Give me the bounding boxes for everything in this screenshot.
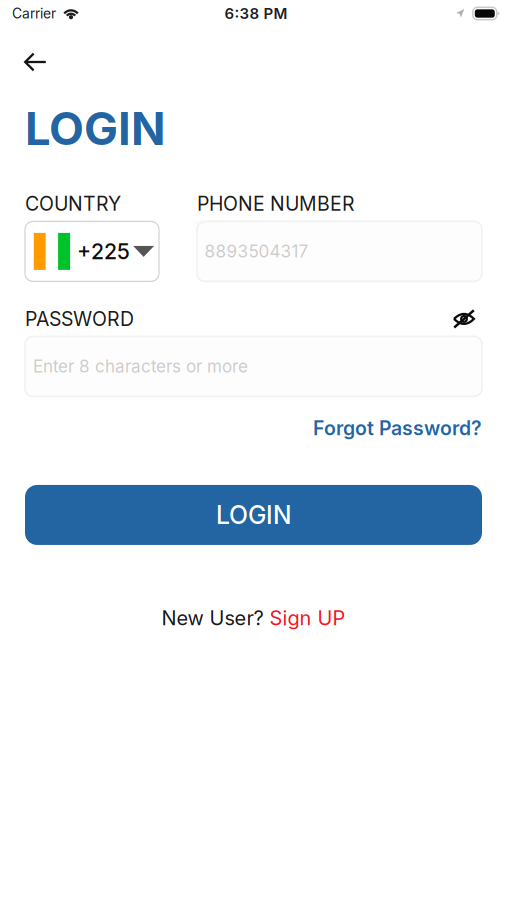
- staticText: Carrier: [12, 5, 56, 22]
- button[interactable]: Sign UP: [269, 606, 345, 630]
- button[interactable]: LOGIN: [25, 485, 482, 545]
- staticText: 8893504317: [204, 241, 308, 262]
- staticText: Enter 8 characters or more: [33, 356, 248, 377]
- staticText: Sign UP: [269, 606, 345, 630]
- staticText: New User?: [161, 606, 269, 630]
- staticText: PHONE NUMBER: [197, 192, 355, 215]
- button[interactable]: Forgot Password?: [313, 416, 482, 440]
- staticText: Forgot Password?: [313, 416, 482, 440]
- staticText: LOGIN: [25, 101, 166, 156]
- staticText: 6:38 PM: [224, 4, 287, 23]
- staticText: COUNTRY: [25, 192, 121, 215]
- staticText: +225: [77, 238, 130, 264]
- button[interactable]: Back: [0, 53, 69, 71]
- staticText: PASSWORD: [25, 307, 134, 331]
- button[interactable]: Show password: [453, 310, 482, 328]
- button[interactable]: +225: [25, 221, 159, 281]
- staticText: LOGIN: [216, 500, 291, 530]
